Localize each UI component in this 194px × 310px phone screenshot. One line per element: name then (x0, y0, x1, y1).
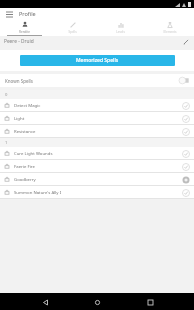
button[interactable]: Known Spells (0, 74, 194, 87)
button[interactable]: Toggle known spells (178, 77, 189, 84)
staticText: Rendite (19, 30, 30, 34)
button[interactable]: Resistance (0, 125, 194, 137)
staticText: 1 (5, 140, 8, 146)
button[interactable]: Light prepared (181, 114, 190, 123)
staticText: Known Spells (5, 78, 33, 84)
staticText: Summon Nature's Ally I (14, 189, 62, 195)
button[interactable]: Home (89, 294, 105, 310)
button[interactable]: Open navigation menu (4, 9, 14, 19)
staticText: Detect Magic (14, 102, 41, 108)
staticText: Peere - Druid (4, 38, 34, 45)
button[interactable]: Resistance prepared (181, 127, 190, 136)
button[interactable]: Peere - Druid (0, 36, 194, 47)
staticText: Profile (19, 10, 36, 17)
button[interactable]: Faerie Fire (0, 160, 194, 172)
button[interactable]: Add Goodberry (181, 175, 190, 184)
button[interactable]: Detect Magic prepared (181, 101, 190, 110)
button[interactable]: Recent apps (142, 294, 158, 310)
button[interactable]: Spells (48, 19, 96, 36)
staticText: 0 (5, 92, 8, 98)
button[interactable]: Levels (96, 19, 145, 36)
button[interactable]: Summon Nature's Ally I (0, 186, 194, 198)
staticText: Elements (163, 30, 177, 34)
button[interactable]: Faerie Fire prepared (181, 162, 190, 171)
button[interactable]: Memorized Spells (20, 55, 175, 66)
button[interactable]: Rendite (0, 19, 48, 36)
staticText: Faerie Fire (14, 163, 35, 169)
staticText: Light (14, 115, 25, 121)
staticText: Spells (68, 30, 77, 34)
button[interactable]: Goodberry (0, 173, 194, 185)
staticText: Memorized Spells (76, 57, 119, 64)
staticText: Cure Light Wounds (14, 150, 53, 156)
button[interactable]: Cure Light Wounds prepared (181, 149, 190, 158)
staticText: Levels (116, 30, 125, 34)
button[interactable]: Back (37, 294, 53, 310)
button[interactable]: Edit character (182, 38, 190, 46)
staticText: Resistance (14, 128, 36, 134)
button[interactable]: Elements (145, 19, 194, 36)
staticText: Goodberry (14, 176, 36, 182)
button[interactable]: Detect Magic (0, 99, 194, 111)
button[interactable]: Summon Nature's Ally I prepared (181, 188, 190, 197)
button[interactable]: Light (0, 112, 194, 124)
button[interactable]: Cure Light Wounds (0, 147, 194, 159)
